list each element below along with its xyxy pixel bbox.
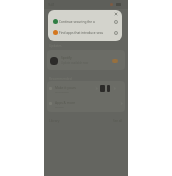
staticText: Make it yours — [55, 85, 76, 89]
button[interactable]: Update — [112, 59, 118, 63]
staticText: Find apps that introduce secu — [59, 31, 104, 35]
button[interactable]: Find apps that introduce secu — [48, 28, 122, 37]
staticText: Apps & more — [55, 100, 76, 104]
button[interactable]: Make it yours — [44, 82, 128, 95]
staticText: Continue securing the a — [59, 20, 95, 24]
button[interactable]: Close — [113, 11, 119, 17]
button[interactable]: Continue securing the a — [48, 17, 122, 26]
staticText: Recommended — [49, 77, 72, 81]
button[interactable]: Spotify — [44, 53, 128, 68]
staticText: Updates — [49, 44, 62, 48]
staticText: Spotify — [61, 56, 72, 60]
